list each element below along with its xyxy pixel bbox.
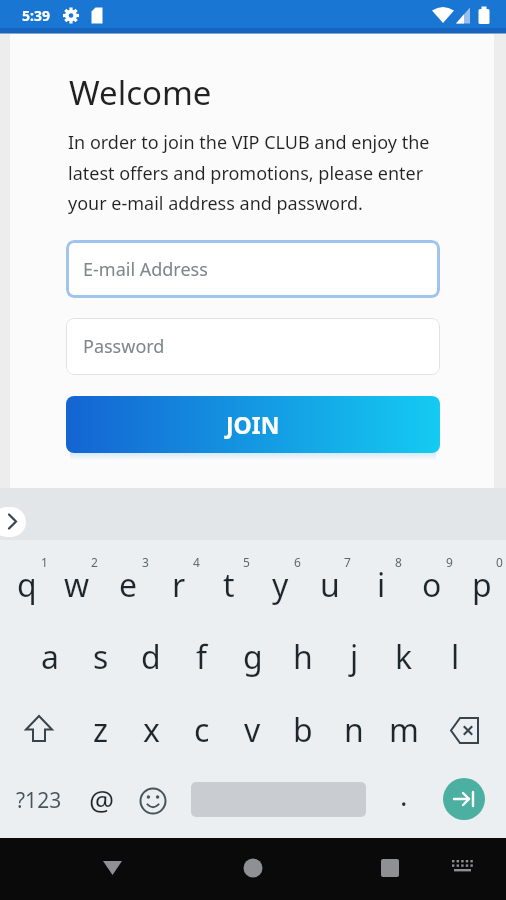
staticText: p bbox=[472, 563, 492, 607]
button[interactable]: Password bbox=[66, 318, 440, 375]
button[interactable]: r bbox=[152, 555, 206, 615]
staticText: l bbox=[451, 635, 460, 679]
button[interactable] bbox=[87, 843, 137, 893]
staticText: j bbox=[350, 635, 359, 679]
staticText: 6 bbox=[294, 554, 301, 570]
staticText: c bbox=[194, 708, 210, 752]
staticText: 5 bbox=[243, 554, 250, 570]
staticText: ?123 bbox=[16, 786, 62, 815]
staticText: 2 bbox=[91, 554, 98, 570]
button[interactable]: h bbox=[276, 627, 330, 687]
staticText: . bbox=[400, 776, 408, 814]
staticText: m bbox=[389, 708, 419, 752]
button[interactable]: ?123 bbox=[12, 770, 66, 830]
staticText: Password bbox=[83, 334, 165, 359]
button[interactable]: . bbox=[377, 765, 431, 825]
button[interactable]: g bbox=[226, 627, 280, 687]
staticText: o bbox=[422, 563, 442, 607]
staticText: @ bbox=[89, 781, 115, 819]
staticText: i bbox=[377, 563, 386, 607]
staticText: a bbox=[41, 635, 59, 679]
staticText: 7 bbox=[344, 554, 351, 570]
staticText: z bbox=[93, 708, 109, 752]
button[interactable]: JOIN bbox=[66, 396, 440, 453]
button[interactable]: E-mail Address bbox=[66, 240, 440, 298]
staticText: x bbox=[143, 708, 160, 752]
staticText: 8 bbox=[395, 554, 402, 570]
button[interactable]: y bbox=[253, 555, 307, 615]
button[interactable]: v bbox=[225, 700, 279, 760]
staticText: 0 bbox=[496, 554, 503, 570]
button[interactable]: b bbox=[276, 700, 330, 760]
button[interactable] bbox=[0, 507, 26, 537]
button[interactable]: e bbox=[101, 555, 155, 615]
button[interactable] bbox=[365, 843, 415, 893]
staticText: b bbox=[293, 708, 313, 752]
staticText: In order to join the VIP CLUB and enjoy … bbox=[68, 130, 430, 215]
button[interactable]: u bbox=[303, 555, 357, 615]
staticText: JOIN bbox=[226, 409, 280, 440]
button[interactable]: s bbox=[74, 627, 128, 687]
button[interactable]: o bbox=[405, 555, 459, 615]
staticText: t bbox=[223, 563, 235, 607]
staticText: v bbox=[244, 708, 261, 752]
button[interactable]: k bbox=[377, 627, 431, 687]
button[interactable]: w bbox=[50, 555, 104, 615]
button[interactable]: c bbox=[175, 700, 229, 760]
staticText: Welcome bbox=[69, 70, 212, 115]
button[interactable]: l bbox=[428, 627, 482, 687]
button[interactable]: a bbox=[23, 627, 77, 687]
staticText: w bbox=[64, 563, 90, 607]
button[interactable]: n bbox=[327, 700, 381, 760]
button[interactable] bbox=[228, 843, 278, 893]
staticText: 3 bbox=[142, 554, 149, 570]
staticText: k bbox=[395, 635, 413, 679]
staticText: n bbox=[344, 708, 364, 752]
button[interactable]: m bbox=[377, 700, 431, 760]
staticText: s bbox=[93, 635, 109, 679]
button[interactable]: i bbox=[354, 555, 408, 615]
staticText: 9 bbox=[446, 554, 453, 570]
button[interactable]: @ bbox=[75, 770, 129, 830]
staticText: E-mail Address bbox=[83, 257, 208, 282]
staticText: q bbox=[17, 563, 37, 607]
button[interactable]: z bbox=[74, 700, 128, 760]
staticText: y bbox=[272, 563, 289, 607]
button[interactable]: q bbox=[0, 555, 54, 615]
button[interactable]: x bbox=[124, 700, 178, 760]
staticText: e bbox=[119, 563, 138, 607]
staticText: 5:39 bbox=[22, 6, 50, 25]
button[interactable]: p bbox=[455, 555, 506, 615]
staticText: 4 bbox=[193, 554, 200, 570]
staticText: u bbox=[320, 563, 340, 607]
button[interactable]: d bbox=[124, 627, 178, 687]
button[interactable]: f bbox=[175, 627, 229, 687]
staticText: r bbox=[172, 563, 186, 607]
staticText: d bbox=[141, 635, 161, 679]
staticText: 1 bbox=[41, 554, 48, 570]
staticText: h bbox=[293, 635, 313, 679]
button[interactable]: j bbox=[327, 627, 381, 687]
button[interactable]: t bbox=[202, 555, 256, 615]
staticText: g bbox=[243, 635, 263, 679]
staticText: f bbox=[196, 635, 208, 679]
